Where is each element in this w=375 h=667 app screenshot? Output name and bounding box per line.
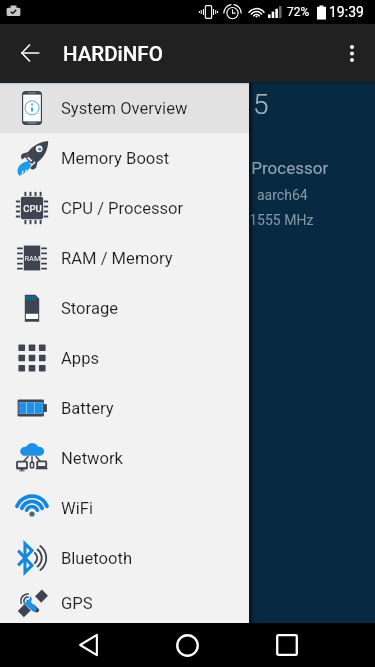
staticText: Network [61,449,124,468]
button[interactable]: Navigate up [10,33,50,73]
staticText: CPU / Processor [61,199,184,218]
staticText: GPS [61,594,93,613]
button[interactable]: Battery [0,383,249,433]
staticText: Max 1555 MHz [219,212,314,228]
button[interactable]: Memory Boost [0,133,249,183]
button[interactable]: System Overview [0,83,249,133]
staticText: Bluetooth [61,549,133,568]
staticText: RAM [24,254,41,263]
staticText: 72% [287,5,310,19]
staticText: 19:39 [329,4,364,20]
staticText: CPU [23,203,42,214]
staticText: Android 5 [151,88,269,121]
staticText: Battery [61,399,114,418]
button[interactable]: GPS [0,583,249,623]
button[interactable]: WiFi [0,483,249,533]
button[interactable]: Apps [0,333,249,383]
staticText: Storage [61,299,119,318]
button[interactable]: Network [0,433,249,483]
button[interactable]: Recent apps [263,623,311,667]
staticText: WiFi [61,499,93,518]
button[interactable]: Back [64,623,112,667]
staticText: RAM / Memory [61,249,173,268]
staticText: Apps [61,349,100,368]
button[interactable]: More options [332,33,372,73]
staticText: System Overview [61,99,188,118]
staticText: CPU / Processor [203,158,329,178]
button[interactable]: Bluetooth [0,533,249,583]
button[interactable]: Storage [0,283,249,333]
staticText: HARDiNFO [63,42,163,66]
button[interactable]: RAM [0,233,249,283]
button[interactable]: CPU [0,183,249,233]
button[interactable]: Home [163,623,211,667]
staticText: aarch64 [257,187,308,203]
staticText: Memory Boost [61,149,170,168]
